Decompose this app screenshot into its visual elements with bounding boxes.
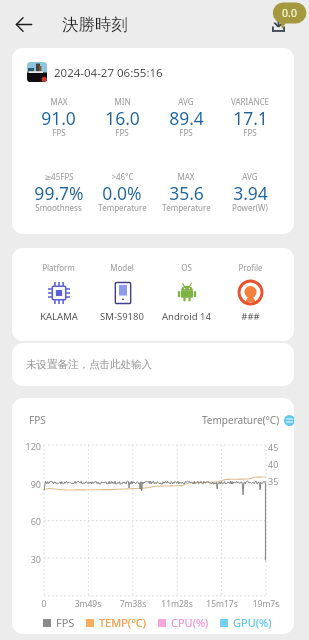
staticText: Temperature bbox=[162, 202, 211, 213]
staticText: 45 bbox=[268, 441, 288, 453]
staticText: >46°C bbox=[111, 171, 134, 182]
staticText: ≥45FPS bbox=[44, 171, 74, 182]
staticText: SM-S9180 bbox=[100, 310, 144, 323]
staticText: 60 bbox=[18, 515, 41, 527]
staticText: 0.0 bbox=[281, 6, 298, 20]
staticText: 17.1 bbox=[233, 106, 268, 130]
staticText: 99.7% bbox=[34, 181, 84, 205]
staticText: 35.6 bbox=[169, 181, 204, 205]
staticText: 7m38s bbox=[113, 598, 153, 610]
staticText: Platform bbox=[42, 262, 75, 273]
staticText: Profile bbox=[238, 262, 263, 273]
staticText: 3m49s bbox=[68, 598, 108, 610]
staticText: FPS bbox=[56, 615, 75, 630]
button[interactable]: Back bbox=[6, 6, 42, 42]
staticText: 30 bbox=[18, 553, 41, 565]
staticText: 未设置备注，点击此处输入 bbox=[26, 358, 152, 371]
staticText: VARIANCE bbox=[231, 96, 269, 107]
staticText: FPS bbox=[243, 127, 257, 138]
staticText: MIN bbox=[114, 96, 131, 107]
staticText: OS bbox=[181, 262, 192, 273]
staticText: 90 bbox=[18, 478, 41, 490]
staticText: AVG bbox=[242, 171, 258, 182]
staticText: MAX bbox=[50, 96, 68, 107]
staticText: 120 bbox=[18, 440, 41, 452]
staticText: 0.0% bbox=[102, 181, 142, 205]
staticText: Temperature(°C) bbox=[202, 413, 280, 427]
staticText: FPS bbox=[29, 413, 46, 427]
staticText: Smoothness bbox=[35, 202, 82, 213]
staticText: 91.0 bbox=[41, 106, 76, 130]
staticText: 35 bbox=[268, 475, 288, 487]
button[interactable]: Download bbox=[271, 18, 286, 33]
staticText: 15m17s bbox=[202, 598, 242, 610]
staticText: MAX bbox=[177, 171, 195, 182]
staticText: FPS bbox=[179, 127, 193, 138]
staticText: 決勝時刻 bbox=[62, 14, 128, 35]
staticText: KALAMA bbox=[40, 310, 78, 323]
staticText: FPS bbox=[52, 127, 66, 138]
button[interactable]: Score 0.0 bbox=[272, 2, 309, 30]
staticText: 19m7s bbox=[246, 598, 286, 610]
staticText: TEMP(°C) bbox=[99, 615, 147, 630]
button[interactable]: Switch right axis metric bbox=[284, 415, 294, 426]
staticText: ### bbox=[241, 310, 260, 323]
staticText: 89.4 bbox=[169, 106, 204, 130]
staticText: 40 bbox=[268, 458, 288, 470]
staticText: 2024-04-27 06:55:16 bbox=[54, 65, 163, 81]
staticText: Power(W) bbox=[232, 202, 268, 213]
staticText: Android 14 bbox=[162, 310, 211, 323]
staticText: 16.0 bbox=[105, 106, 140, 130]
staticText: Model bbox=[110, 262, 134, 273]
staticText: 0 bbox=[24, 598, 64, 610]
staticText: FPS bbox=[115, 127, 129, 138]
staticText: 3.94 bbox=[233, 181, 268, 205]
staticText: 11m28s bbox=[157, 598, 197, 610]
staticText: GPU(%) bbox=[233, 615, 272, 630]
staticText: AVG bbox=[178, 96, 194, 107]
button[interactable]: 未设置备注，点击此处输入 bbox=[12, 343, 294, 386]
staticText: CPU(%) bbox=[171, 615, 209, 630]
staticText: Temperature bbox=[98, 202, 147, 213]
